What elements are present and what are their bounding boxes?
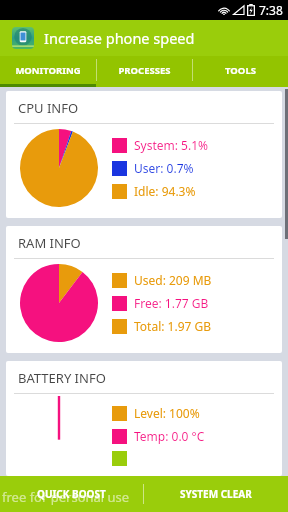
button[interactable]: MONITORING <box>0 56 96 84</box>
button[interactable]: SYSTEM CLEAR <box>144 476 288 512</box>
staticText: Idle: 94.3% <box>134 183 196 199</box>
button[interactable]: CPU INFO <box>6 91 282 218</box>
staticText: BATTERY INFO <box>18 369 106 387</box>
staticText: Temp: 0.0 °C <box>134 428 205 444</box>
button[interactable]: RAM INFO <box>6 226 282 353</box>
staticText: Used: 209 MB <box>134 272 212 288</box>
staticText: System: 5.1% <box>134 137 209 153</box>
staticText: TOOLS <box>225 64 256 77</box>
staticText: free for personal use <box>2 488 130 506</box>
staticText: SYSTEM CLEAR <box>180 487 252 501</box>
button[interactable]: BATTERY INFO <box>6 361 282 476</box>
staticText: User: 0.7% <box>134 160 194 176</box>
staticText: PROCESSES <box>118 64 171 77</box>
staticText: CPU INFO <box>18 99 79 117</box>
staticText: RAM INFO <box>18 234 81 252</box>
staticText: 7:38 <box>259 2 283 18</box>
staticText: QUICK BOOST <box>37 487 106 501</box>
button[interactable]: PROCESSES <box>97 56 192 84</box>
staticText: Free: 1.77 GB <box>134 295 209 311</box>
staticText: Increase phone speed <box>44 28 195 48</box>
staticText: Level: 100% <box>134 405 200 421</box>
staticText: MONITORING <box>15 64 81 77</box>
button[interactable]: QUICK BOOST <box>0 476 143 512</box>
button[interactable]: TOOLS <box>193 56 288 84</box>
staticText: Total: 1.97 GB <box>134 318 212 334</box>
